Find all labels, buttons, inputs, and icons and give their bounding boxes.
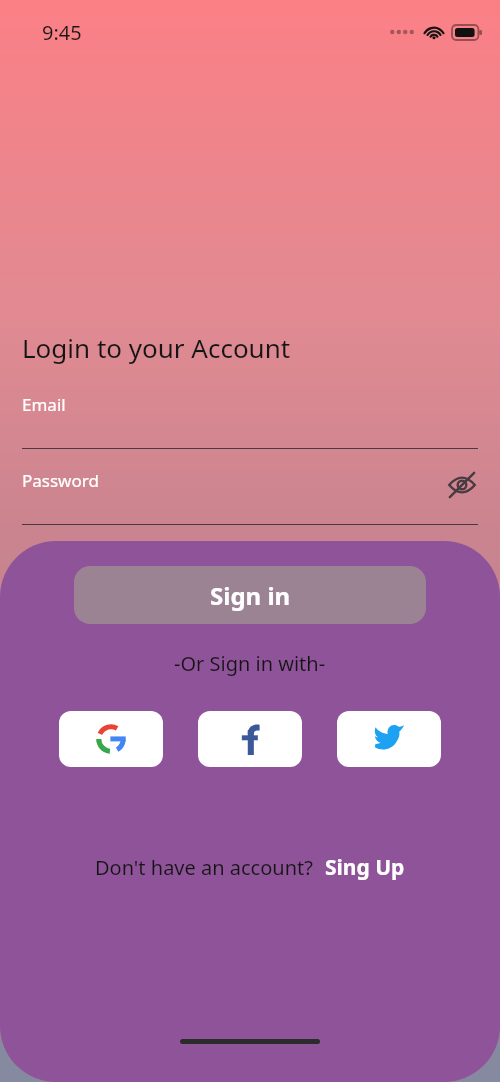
staticText: Password [22, 469, 99, 492]
staticText: 9:45 [42, 19, 82, 46]
staticText: Sign in [210, 579, 291, 612]
button[interactable]: Sign in with Google [59, 711, 163, 767]
button[interactable]: Show password [446, 469, 478, 501]
staticText: Sing Up [325, 853, 405, 882]
button[interactable]: Sing Up [313, 853, 405, 882]
staticText: Email [22, 393, 66, 416]
button[interactable]: Sign in [74, 566, 426, 624]
staticText: Login to your Account [22, 330, 291, 365]
button[interactable]: Email [22, 393, 478, 449]
button[interactable]: Sign in with Twitter [337, 711, 441, 767]
button[interactable]: Sign in with Facebook [198, 711, 302, 767]
button[interactable]: Password [22, 469, 478, 525]
staticText: -Or Sign in with- [174, 650, 326, 677]
staticText: Don't have an account? [95, 854, 313, 881]
